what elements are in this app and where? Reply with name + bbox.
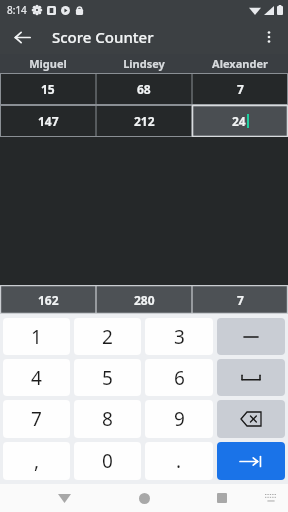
button[interactable]: 24 [192, 105, 288, 137]
button[interactable]: 15 [0, 73, 96, 105]
button[interactable]: Back [52, 486, 76, 510]
button[interactable]: Lindsey [96, 54, 192, 73]
button[interactable]: More options [253, 21, 285, 53]
button[interactable]: Miguel [0, 54, 96, 73]
button[interactable]: Minus [217, 318, 285, 355]
button[interactable]: 3 [145, 318, 213, 355]
staticText: 5 [102, 365, 113, 391]
button[interactable]: 68 [96, 73, 192, 105]
button[interactable]: Alexander [192, 54, 288, 73]
staticText: 24 [232, 113, 246, 129]
button[interactable]: 147 [0, 105, 96, 137]
staticText: . [176, 448, 182, 474]
staticText: 7 [237, 81, 244, 97]
button[interactable]: Home [132, 486, 156, 510]
staticText: , [34, 448, 40, 474]
staticText: 162 [38, 292, 59, 308]
staticText: Score Counter [52, 27, 154, 47]
button[interactable]: 2 [74, 318, 141, 355]
button[interactable]: 1 [3, 318, 70, 355]
button[interactable]: Switch keyboard [260, 487, 282, 509]
button[interactable]: 0 [74, 442, 141, 480]
staticText: 280 [134, 292, 155, 308]
staticText: 3 [174, 324, 185, 350]
staticText: 1 [31, 324, 42, 350]
button[interactable]: Space [217, 359, 285, 396]
button[interactable]: 8 [74, 400, 141, 438]
button[interactable]: 280 [96, 285, 192, 314]
staticText: 2 [102, 324, 113, 350]
button[interactable]: 7 [192, 285, 288, 314]
staticText: 4 [31, 365, 42, 391]
button[interactable]: 162 [0, 285, 96, 314]
button[interactable]: 6 [145, 359, 213, 396]
button[interactable]: 9 [145, 400, 213, 438]
staticText: 147 [38, 113, 59, 129]
button[interactable]: . [145, 442, 213, 480]
button[interactable]: Enter [217, 442, 285, 480]
button[interactable]: 5 [74, 359, 141, 396]
staticText: Miguel [29, 56, 67, 71]
staticText: Lindsey [123, 56, 165, 71]
staticText: Alexander [212, 56, 268, 71]
staticText: 212 [134, 113, 155, 129]
staticText: 0 [102, 448, 113, 474]
button[interactable]: Recents [210, 486, 234, 510]
staticText: 15 [41, 81, 55, 97]
button[interactable]: Back [6, 21, 38, 53]
staticText: 7 [31, 406, 42, 432]
staticText: 6 [174, 365, 185, 391]
button[interactable]: Backspace [217, 400, 285, 438]
button[interactable]: 4 [3, 359, 70, 396]
button[interactable]: 7 [3, 400, 70, 438]
staticText: 68 [137, 81, 151, 97]
staticText: 7 [237, 292, 244, 308]
button[interactable]: 7 [192, 73, 288, 105]
button[interactable]: , [3, 442, 70, 480]
staticText: 9 [174, 406, 185, 432]
button[interactable]: 212 [96, 105, 192, 137]
staticText: 8:14 [7, 3, 27, 17]
staticText: 8 [102, 406, 113, 432]
